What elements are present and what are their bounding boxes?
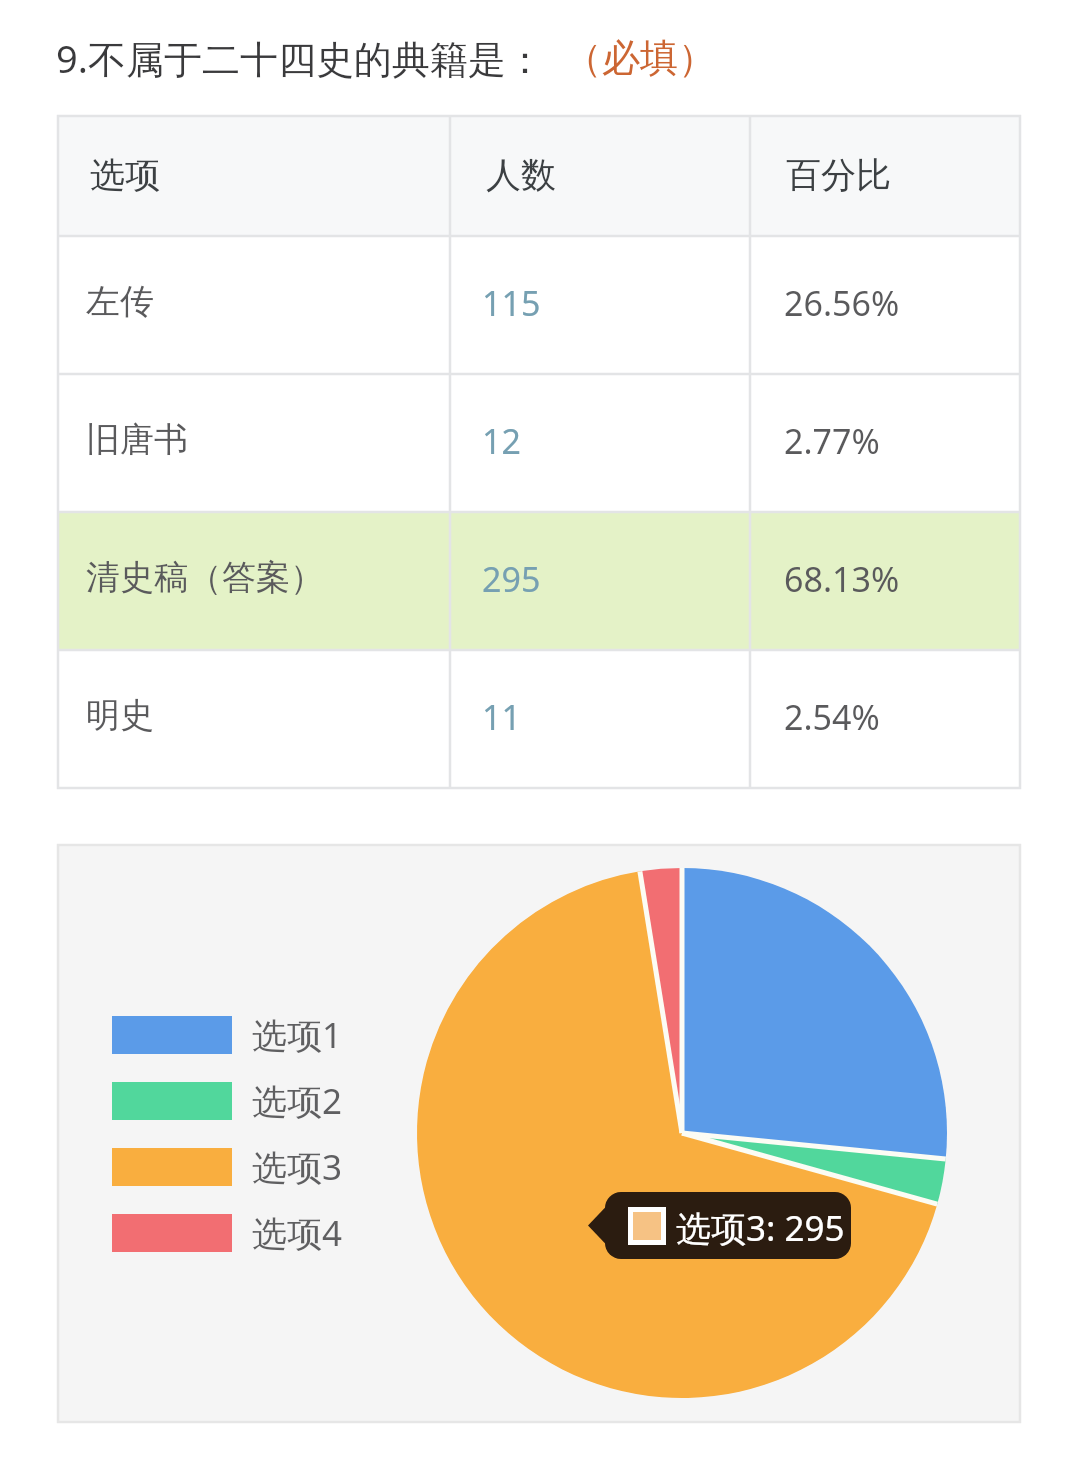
staticText: （必填） [564,34,716,82]
staticText: 选项3: 295 [676,1204,845,1252]
staticText: 选项3 [252,1143,343,1191]
staticText: 百分比 [786,153,891,197]
staticText: 左传 [86,280,154,323]
staticText: 68.13% [784,556,900,602]
staticText: 明史 [86,694,154,737]
button[interactable]: 选项1 [104,1008,364,1062]
other: 选项3: 295 [676,1204,845,1252]
staticText: 11 [482,694,521,740]
button[interactable]: 9.不属于二十四史的典籍是： [56,32,716,84]
button[interactable]: 选项2 [104,1074,364,1128]
staticText: 295 [482,556,541,602]
button[interactable]: 选项3 [104,1140,364,1194]
staticText: 选项1 [252,1011,343,1059]
staticText: 旧唐书 [86,418,188,461]
staticText: 115 [482,280,541,326]
staticText: 12 [482,418,521,464]
staticText: 26.56% [784,280,900,326]
staticText: 9.不属于二十四史的典籍是： [56,32,544,84]
staticText: 人数 [486,153,556,197]
staticText: 选项2 [252,1077,343,1125]
staticText: 2.77% [784,418,880,464]
button[interactable]: 选项4 [104,1206,364,1260]
staticText: 选项4 [252,1209,343,1257]
staticText: 2.54% [784,694,880,740]
staticText: 清史稿（答案） [86,556,324,599]
staticText: 选项 [90,153,160,197]
